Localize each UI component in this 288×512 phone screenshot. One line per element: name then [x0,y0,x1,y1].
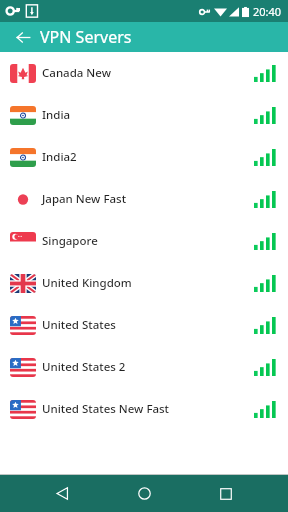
staticText: India2 [42,149,77,165]
staticText: Japan New Fast [42,191,127,207]
button[interactable]: India2 [0,136,288,178]
button[interactable]: Canada New [0,52,288,94]
button[interactable]: Singapore [0,220,288,262]
button[interactable]: Japan New Fast [0,178,288,220]
button[interactable]: United Kingdom [0,262,288,304]
button[interactable]: United States 2 [0,346,288,388]
staticText: United States [42,317,116,333]
staticText: India [42,107,71,123]
button[interactable]: Back [10,24,36,50]
button[interactable]: Home [124,475,164,512]
staticText: Canada New [42,65,111,81]
staticText: VPN Servers [40,26,132,48]
staticText: 20:40 [253,4,282,19]
staticText: Singapore [42,233,98,249]
staticText: United Kingdom [42,275,132,291]
button[interactable]: Recents [206,475,246,512]
staticText: United States New Fast [42,401,170,417]
staticText: United States 2 [42,359,126,375]
button[interactable]: India [0,94,288,136]
button[interactable]: United States [0,304,288,346]
button[interactable]: United States New Fast [0,388,288,430]
button[interactable]: Back [42,475,82,512]
